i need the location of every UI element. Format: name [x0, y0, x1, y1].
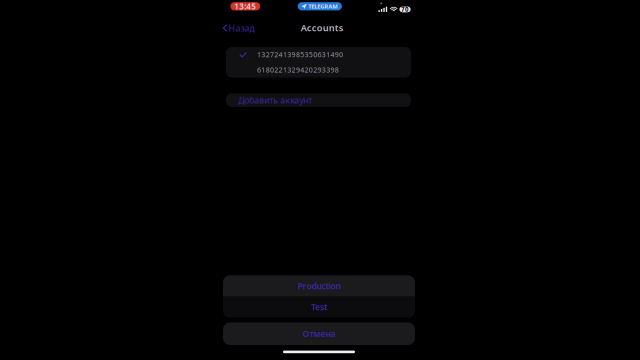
staticText: Test — [311, 301, 327, 313]
button[interactable]: Test — [223, 297, 415, 317]
staticText: 13272413985350631490 — [257, 50, 343, 59]
staticText: 13:45 — [234, 1, 256, 12]
staticText: Отмена — [302, 328, 335, 339]
staticText: Добавить аккаунт — [238, 94, 312, 106]
button[interactable]: Отмена — [223, 322, 415, 345]
button[interactable]: Return to call — [230, 2, 260, 10]
button[interactable]: 6180221329420293398 — [226, 62, 411, 77]
button[interactable]: Telegram — [298, 2, 342, 10]
staticText: Назад — [228, 22, 254, 34]
staticText: 70 — [401, 5, 409, 14]
button[interactable]: Назад — [222, 21, 256, 34]
button[interactable]: Production — [223, 275, 415, 297]
staticText: Production — [297, 280, 340, 292]
staticText: Accounts — [301, 21, 344, 34]
button[interactable]: Добавить аккаунт — [226, 93, 411, 107]
button[interactable]: 13272413985350631490 — [226, 47, 411, 62]
staticText: 6180221329420293398 — [257, 65, 339, 75]
staticText: TELEGRAM — [308, 2, 338, 10]
